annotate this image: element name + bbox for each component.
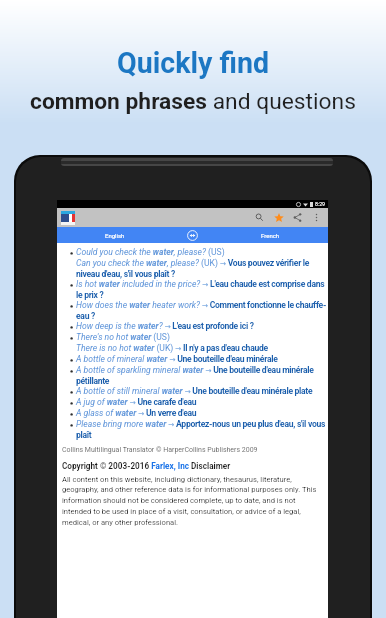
- staticText: There is no hot water (UK) → Il n'y a pa…: [76, 343, 268, 353]
- button[interactable]: English: [57, 227, 172, 243]
- button[interactable]: More options: [307, 208, 326, 227]
- staticText: Collins Multilingual Translator © Harper…: [62, 446, 258, 454]
- staticText: 8:29: [315, 201, 326, 207]
- button[interactable]: Swap languages: [172, 227, 212, 243]
- button[interactable]: French: [212, 227, 328, 243]
- staticText: All content on this website, including d…: [62, 475, 322, 527]
- button[interactable]: Favorites: [269, 208, 288, 227]
- staticText: Quickly find: [117, 46, 270, 80]
- staticText: English: [105, 232, 125, 239]
- staticText: A bottle of sparkling mineral water → Un…: [76, 365, 328, 386]
- staticText: How deep is the water? → L'eau est profo…: [76, 321, 254, 331]
- staticText: Please bring more water → Apportez-nous …: [76, 419, 328, 440]
- staticText: A glass of water → Un verre d'eau: [76, 408, 197, 418]
- staticText: Can you check the water, please? (UK) → …: [76, 258, 328, 279]
- staticText: A bottle of still mineral water → Une bo…: [76, 386, 313, 396]
- button[interactable]: Search: [250, 208, 269, 227]
- staticText: French: [261, 232, 280, 239]
- staticText: Is hot water included in the price? → L'…: [76, 279, 328, 300]
- staticText: common phrases and questions: [30, 88, 356, 115]
- staticText: Could you check the water, please? (US): [76, 247, 225, 257]
- staticText: A jug of water → Une carafe d'eau: [76, 397, 197, 407]
- staticText: How does the water heater work? → Commen…: [76, 300, 328, 321]
- button[interactable]: Share: [288, 208, 307, 227]
- staticText: There's no hot water (US): [76, 332, 170, 342]
- staticText: Copyright © 2003-2016 Farlex, Inc Discla…: [62, 461, 231, 471]
- staticText: A bottle of mineral water → Une bouteill…: [76, 354, 278, 364]
